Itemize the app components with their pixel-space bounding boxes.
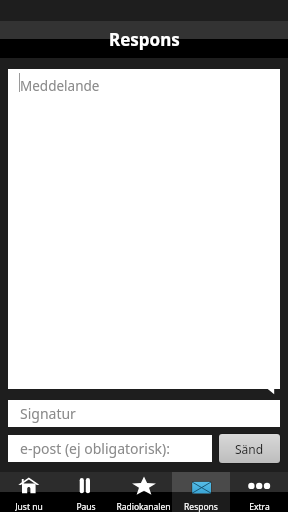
staticText: Respons xyxy=(184,501,218,512)
button[interactable]: Extra xyxy=(230,472,288,512)
staticText: Signatur xyxy=(20,404,76,423)
staticText: Meddelande xyxy=(20,77,100,95)
button[interactable]: e-post (ej obligatorisk): xyxy=(8,435,212,462)
staticText: Respons xyxy=(109,28,180,51)
button[interactable]: Signatur xyxy=(8,400,280,427)
staticText: e-post (ej obligatorisk): xyxy=(20,439,171,458)
button[interactable]: Respons xyxy=(172,472,230,512)
staticText: Radiokanalen xyxy=(116,501,171,512)
staticText: Just nu xyxy=(15,501,43,512)
button[interactable]: Radiokanalen xyxy=(114,472,172,512)
staticText: Sänd xyxy=(235,441,264,457)
button[interactable]: Just nu xyxy=(0,472,57,512)
button[interactable]: Sänd xyxy=(219,434,280,463)
button[interactable]: Paus xyxy=(57,472,114,512)
staticText: Extra xyxy=(249,501,270,512)
button[interactable]: Meddelande xyxy=(8,69,280,389)
staticText: Paus xyxy=(76,501,96,512)
